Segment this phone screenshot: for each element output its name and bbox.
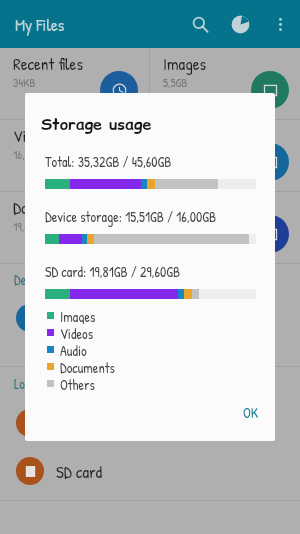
button[interactable]: Videos: [0, 120, 149, 191]
staticText: My Files: [15, 13, 180, 36]
button[interactable]: Search: [180, 4, 220, 44]
button[interactable]: Internal storage: [0, 294, 300, 342]
staticText: 0B: [163, 218, 175, 234]
staticText: Local storage: [14, 374, 82, 393]
staticText: Videos: [13, 124, 54, 147]
staticText: Recent files: [13, 52, 83, 75]
button[interactable]: Audio: [150, 120, 300, 191]
staticText: Audio: [60, 341, 87, 358]
staticText: Internal storage: [56, 307, 157, 330]
staticText: OK: [243, 403, 259, 422]
staticText: 16,1GB: [13, 146, 41, 162]
staticText: Videos: [60, 324, 94, 341]
staticText: Documents: [13, 196, 80, 219]
staticText: 5,5GB: [163, 74, 188, 90]
staticText: Total: 35,32GB / 45,60GB: [45, 152, 172, 171]
button[interactable]: More options: [260, 4, 300, 44]
button[interactable]: SD card: [0, 447, 300, 495]
staticText: Device storage: 15,51GB / 16,00GB: [45, 207, 217, 226]
staticText: Documents: [60, 358, 115, 375]
button[interactable]: Documents: [0, 192, 149, 263]
staticText: Images: [60, 307, 96, 324]
staticText: Device storage: [14, 270, 88, 289]
button[interactable]: Images: [150, 48, 300, 119]
staticText: SD card: [56, 460, 103, 483]
staticText: Downloads: [163, 196, 225, 219]
button[interactable]: OK: [232, 396, 270, 429]
staticText: 19,6MB: [13, 218, 43, 234]
staticText: 1,2GB: [163, 146, 188, 162]
staticText: 34KB: [13, 74, 36, 90]
staticText: Others: [60, 375, 95, 392]
staticText: Storage usage: [41, 113, 152, 135]
button[interactable]: Storage usage: [220, 4, 260, 44]
button[interactable]: Recent files: [0, 48, 149, 119]
button[interactable]: Device storage: [0, 399, 300, 447]
staticText: Images: [163, 52, 207, 75]
button[interactable]: Downloads: [150, 192, 300, 263]
staticText: SD card: 19,81GB / 29,60GB: [45, 262, 181, 281]
